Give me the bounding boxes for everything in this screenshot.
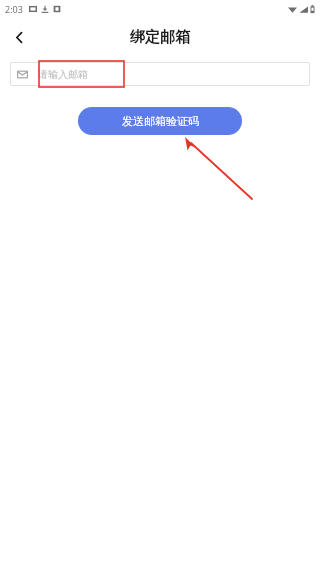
staticText: 请输入邮箱 [38, 68, 88, 81]
button[interactable]: 发送邮箱验证码 [78, 107, 242, 135]
staticText: 绑定邮箱 [130, 28, 190, 47]
button[interactable]: 请输入邮箱 [10, 62, 310, 86]
staticText: 2:03 [5, 3, 23, 15]
staticText: 发送邮箱验证码 [122, 114, 199, 128]
button[interactable]: Back [0, 18, 38, 56]
